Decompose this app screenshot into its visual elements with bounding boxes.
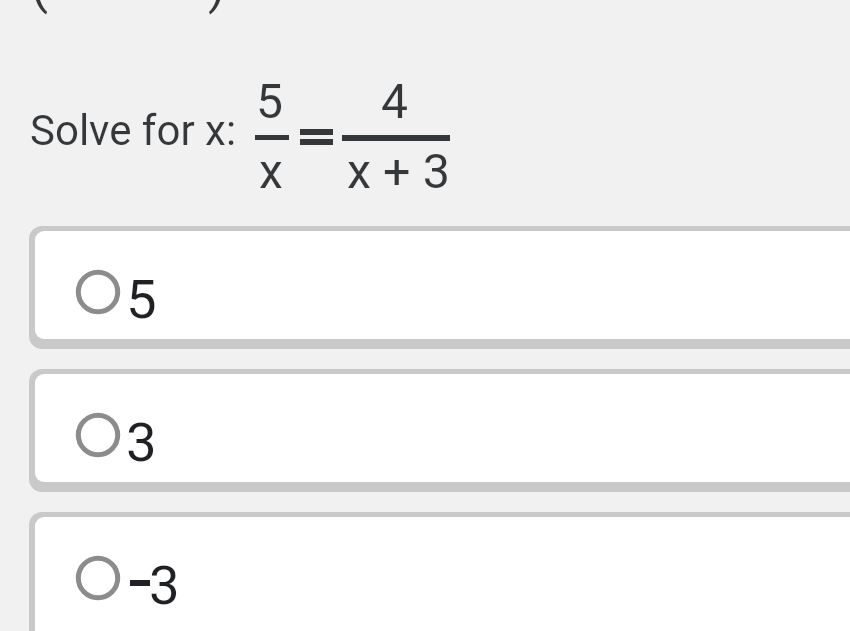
staticText: ( — [31, 0, 49, 16]
staticText: 4 — [381, 73, 408, 129]
button[interactable]: 3 — [29, 512, 850, 631]
staticText: x + 3 — [347, 143, 450, 200]
staticText: x — [259, 143, 283, 199]
staticText: 5 — [126, 267, 157, 331]
button[interactable]: 3 — [29, 369, 850, 492]
staticText: 3 — [126, 410, 157, 474]
staticText: 3 — [149, 553, 180, 617]
button[interactable]: 5 — [29, 226, 850, 349]
staticText: Solve for x: — [30, 106, 237, 155]
staticText: 5 — [256, 73, 283, 129]
staticText: ) — [208, 0, 226, 16]
